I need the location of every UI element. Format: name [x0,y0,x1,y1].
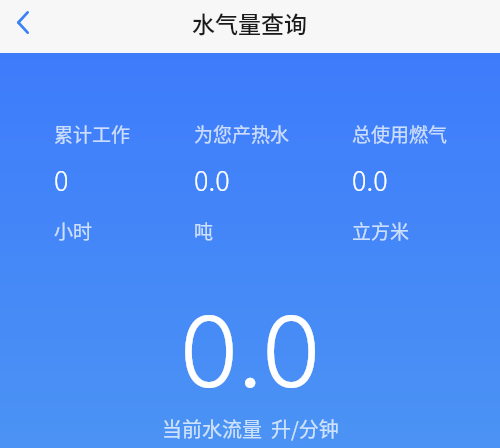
staticText: 0.0 [194,160,230,199]
staticText: 0.0 [352,160,388,199]
staticText: 总使用燃气 [352,120,448,148]
staticText: 为您产热水 [194,120,290,148]
staticText: 立方米 [352,217,410,245]
staticText: 水气量查询 [192,6,307,39]
staticText: 0 [54,160,69,199]
staticText: 吨 [194,217,214,245]
staticText: 当前水流量 升/分钟 [162,414,339,443]
staticText: 累计工作 [54,120,131,148]
staticText: 0.0 [179,293,322,410]
button[interactable]: Back [1,0,45,44]
staticText: 小时 [54,217,93,245]
